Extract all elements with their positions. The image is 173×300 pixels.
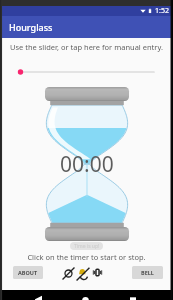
staticText: Time is up! bbox=[74, 243, 100, 250]
button[interactable]: Bell off bbox=[76, 267, 90, 281]
button[interactable]: Use the slider, or tap here for manual e… bbox=[0, 38, 173, 55]
staticText: ABOUT bbox=[18, 269, 38, 276]
button[interactable]: Keep screen on bbox=[62, 267, 75, 280]
button[interactable]: Vibrate bbox=[92, 267, 103, 278]
staticText: Hourglass bbox=[9, 21, 53, 33]
button[interactable] bbox=[0, 65, 173, 79]
button[interactable]: Back bbox=[35, 295, 42, 300]
staticText: Click on the timer to start or stop. bbox=[27, 252, 146, 262]
staticText: 1:52 bbox=[155, 6, 169, 16]
button[interactable]: Home bbox=[82, 295, 89, 300]
button[interactable]: ABOUT bbox=[13, 266, 43, 279]
staticText: BELL bbox=[141, 269, 154, 276]
staticText: Use the slider, or tap here for manual e… bbox=[10, 42, 163, 52]
staticText: 00:00 bbox=[60, 150, 114, 179]
button[interactable]: BELL bbox=[132, 266, 163, 279]
button[interactable]: Recents bbox=[130, 296, 136, 300]
button[interactable]: 00:00 bbox=[45, 87, 129, 241]
